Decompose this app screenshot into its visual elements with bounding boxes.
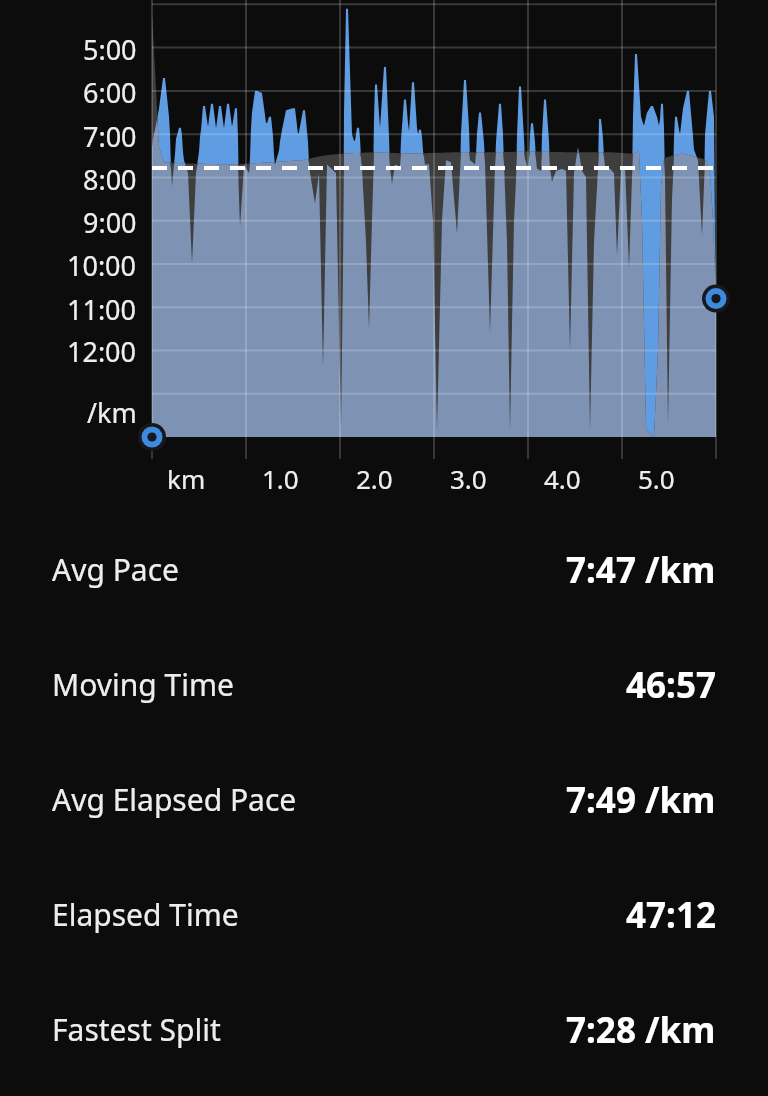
staticText: 1.0 — [262, 461, 299, 496]
staticText: km — [167, 461, 206, 496]
staticText: 12:00 — [67, 333, 137, 370]
staticText: 10:00 — [67, 247, 137, 284]
staticText: 5.0 — [638, 461, 675, 496]
staticText: 5:00 — [83, 31, 137, 68]
staticText: /km — [87, 394, 137, 431]
staticText: 2.0 — [356, 461, 393, 496]
staticText: 4.0 — [544, 461, 581, 496]
button[interactable]: Avg Pace — [0, 512, 768, 627]
button[interactable]: Avg Elapsed Pace — [0, 742, 768, 857]
staticText: 9:00 — [83, 204, 137, 241]
staticText: 7:47 /km — [566, 546, 716, 594]
staticText: 11:00 — [67, 291, 137, 328]
staticText: 46:57 — [626, 661, 716, 709]
button[interactable]: Fastest Split — [0, 972, 768, 1087]
staticText: Avg Pace — [52, 549, 179, 590]
staticText: 8:00 — [83, 161, 137, 198]
staticText: 7:00 — [83, 118, 137, 155]
staticText: 6:00 — [83, 74, 137, 111]
staticText: 47:12 — [626, 891, 716, 939]
staticText: Fastest Split — [52, 1009, 221, 1050]
staticText: Moving Time — [52, 664, 234, 705]
button[interactable]: Moving Time — [0, 627, 768, 742]
button[interactable]: Elapsed Time — [0, 857, 768, 972]
staticText: 3.0 — [450, 461, 487, 496]
staticText: 7:28 /km — [566, 1006, 716, 1054]
staticText: Avg Elapsed Pace — [52, 779, 297, 820]
staticText: Elapsed Time — [52, 894, 239, 935]
staticText: 7:49 /km — [566, 776, 716, 824]
